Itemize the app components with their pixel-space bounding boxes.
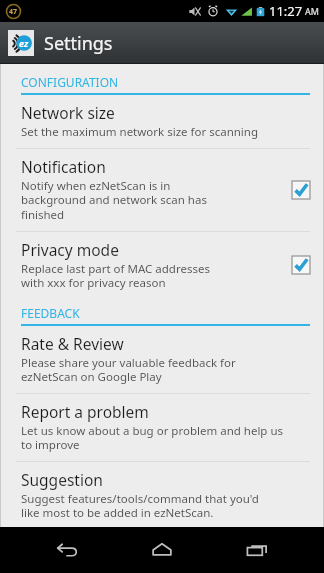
button[interactable]: Privacy mode bbox=[0, 232, 324, 299]
staticText: Rate & Review bbox=[21, 333, 124, 354]
staticText: Please share your valuable feedback for … bbox=[21, 355, 236, 385]
button[interactable]: Recent apps bbox=[229, 527, 285, 573]
staticText: AM bbox=[305, 5, 319, 17]
staticText: Privacy mode bbox=[21, 239, 119, 260]
staticText: Network size bbox=[21, 102, 115, 123]
staticText: Report a problem bbox=[21, 401, 149, 422]
staticText: Suggestion bbox=[21, 469, 103, 490]
button[interactable]: Home bbox=[134, 527, 190, 573]
staticText: CONFIGURATION bbox=[21, 74, 119, 90]
staticText: Replace last part of MAC addresses with … bbox=[21, 261, 210, 291]
button[interactable]: Toggle setting bbox=[292, 181, 310, 199]
staticText: Notify when ezNetScan is in background a… bbox=[21, 178, 207, 223]
staticText: Notification bbox=[21, 156, 106, 177]
button[interactable]: Back bbox=[39, 527, 95, 573]
button[interactable]: Network size bbox=[0, 95, 324, 148]
staticText: Suggest features/tools/command that you'… bbox=[21, 491, 259, 519]
staticText: 47 bbox=[9, 7, 18, 17]
staticText: 11:27 bbox=[269, 2, 303, 20]
staticText: FEEDBACK bbox=[21, 305, 80, 321]
staticText: ez bbox=[19, 37, 29, 49]
staticText: Let us know about a bug or problem and h… bbox=[21, 423, 284, 453]
staticText: Settings bbox=[44, 31, 113, 56]
button[interactable]: Suggestion bbox=[0, 462, 324, 527]
button[interactable]: Notification bbox=[0, 149, 324, 231]
button[interactable]: Toggle setting bbox=[292, 256, 310, 274]
button[interactable]: Report a problem bbox=[0, 394, 324, 461]
staticText: Set the maximum network size for scannin… bbox=[21, 124, 259, 140]
button[interactable]: Rate & Review bbox=[0, 326, 324, 393]
